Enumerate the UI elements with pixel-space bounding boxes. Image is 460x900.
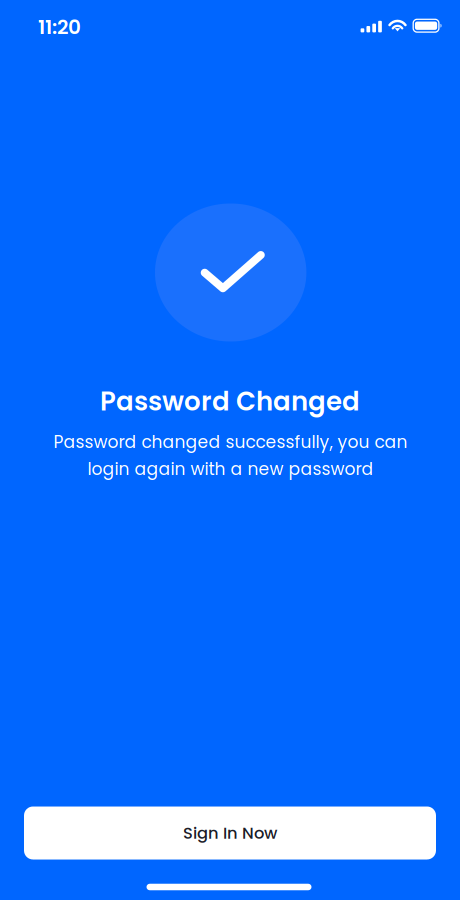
button[interactable]: Sign In Now: [24, 806, 436, 859]
staticText: Sign In Now: [183, 822, 277, 844]
staticText: 11:20: [38, 13, 81, 41]
staticText: login again with a new password: [87, 457, 373, 481]
staticText: Password changed successfully, you can: [53, 430, 407, 454]
staticText: Password Changed: [100, 383, 360, 420]
